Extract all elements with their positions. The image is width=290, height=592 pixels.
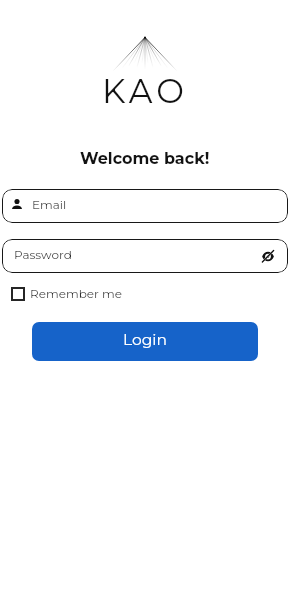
staticText: KAO — [102, 71, 189, 111]
button[interactable]: Password — [2, 239, 288, 273]
button[interactable]: Show password — [259, 247, 277, 265]
button[interactable]: Email — [2, 189, 288, 223]
staticText: Password — [14, 247, 72, 262]
staticText: Email — [32, 197, 67, 212]
staticText: Welcome back! — [80, 149, 210, 169]
staticText: Login — [123, 330, 167, 349]
button[interactable]: Remember me — [10, 288, 290, 303]
staticText: Remember me — [30, 286, 122, 301]
button[interactable]: Login — [32, 322, 258, 361]
